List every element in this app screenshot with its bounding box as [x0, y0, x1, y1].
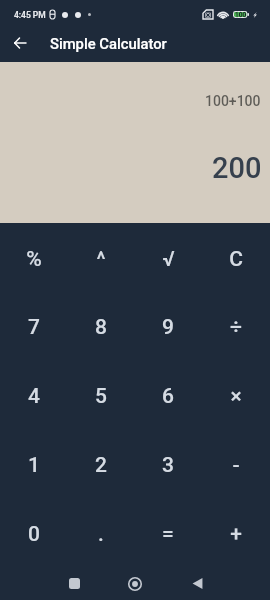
staticText: ^ [96, 247, 106, 272]
staticText: 4:45 PM [14, 10, 46, 20]
staticText: C [229, 247, 243, 272]
button[interactable]: 3 [134, 429, 202, 498]
button[interactable]: - [202, 429, 270, 498]
staticText: 8 [95, 315, 107, 340]
button[interactable]: % [0, 223, 67, 291]
staticText: Simple Calculator [50, 35, 167, 52]
staticText: 2 [95, 453, 107, 478]
button[interactable]: 0 [0, 498, 67, 567]
staticText: = [162, 522, 174, 547]
button[interactable]: 5 [67, 360, 134, 429]
staticText: 6 [162, 384, 174, 409]
button[interactable]: 6 [134, 360, 202, 429]
button[interactable]: 7 [0, 291, 67, 360]
button[interactable]: √ [134, 223, 202, 291]
button[interactable]: C [202, 223, 270, 291]
staticText: + [230, 522, 242, 547]
staticText: 100 [235, 11, 247, 18]
staticText: 4 [28, 384, 40, 409]
button[interactable]: ÷ [202, 291, 270, 360]
staticText: 200 [212, 151, 262, 185]
staticText: √ [162, 247, 175, 272]
staticText: 7 [28, 315, 40, 340]
staticText: 0 [28, 522, 40, 547]
staticText: 1 [28, 453, 40, 478]
button[interactable]: Back [177, 567, 217, 600]
button[interactable]: Recent apps [54, 567, 94, 600]
button[interactable]: . [67, 498, 134, 567]
button[interactable]: 9 [134, 291, 202, 360]
staticText: 3 [162, 453, 174, 478]
staticText: ÷ [230, 315, 242, 340]
staticText: 9 [162, 315, 174, 340]
staticText: 100+100 [205, 93, 261, 109]
button[interactable]: Back [0, 24, 40, 62]
button[interactable]: 1 [0, 429, 67, 498]
button[interactable]: Home [115, 567, 155, 600]
staticText: - [232, 453, 240, 478]
staticText: % [26, 247, 42, 272]
button[interactable]: ^ [67, 223, 134, 291]
staticText: . [98, 522, 104, 547]
button[interactable]: 4 [0, 360, 67, 429]
button[interactable]: = [134, 498, 202, 567]
button[interactable]: × [202, 360, 270, 429]
staticText: 5 [95, 384, 107, 409]
button[interactable]: 8 [67, 291, 134, 360]
button[interactable]: + [202, 498, 270, 567]
staticText: × [230, 384, 242, 409]
button[interactable]: 2 [67, 429, 134, 498]
